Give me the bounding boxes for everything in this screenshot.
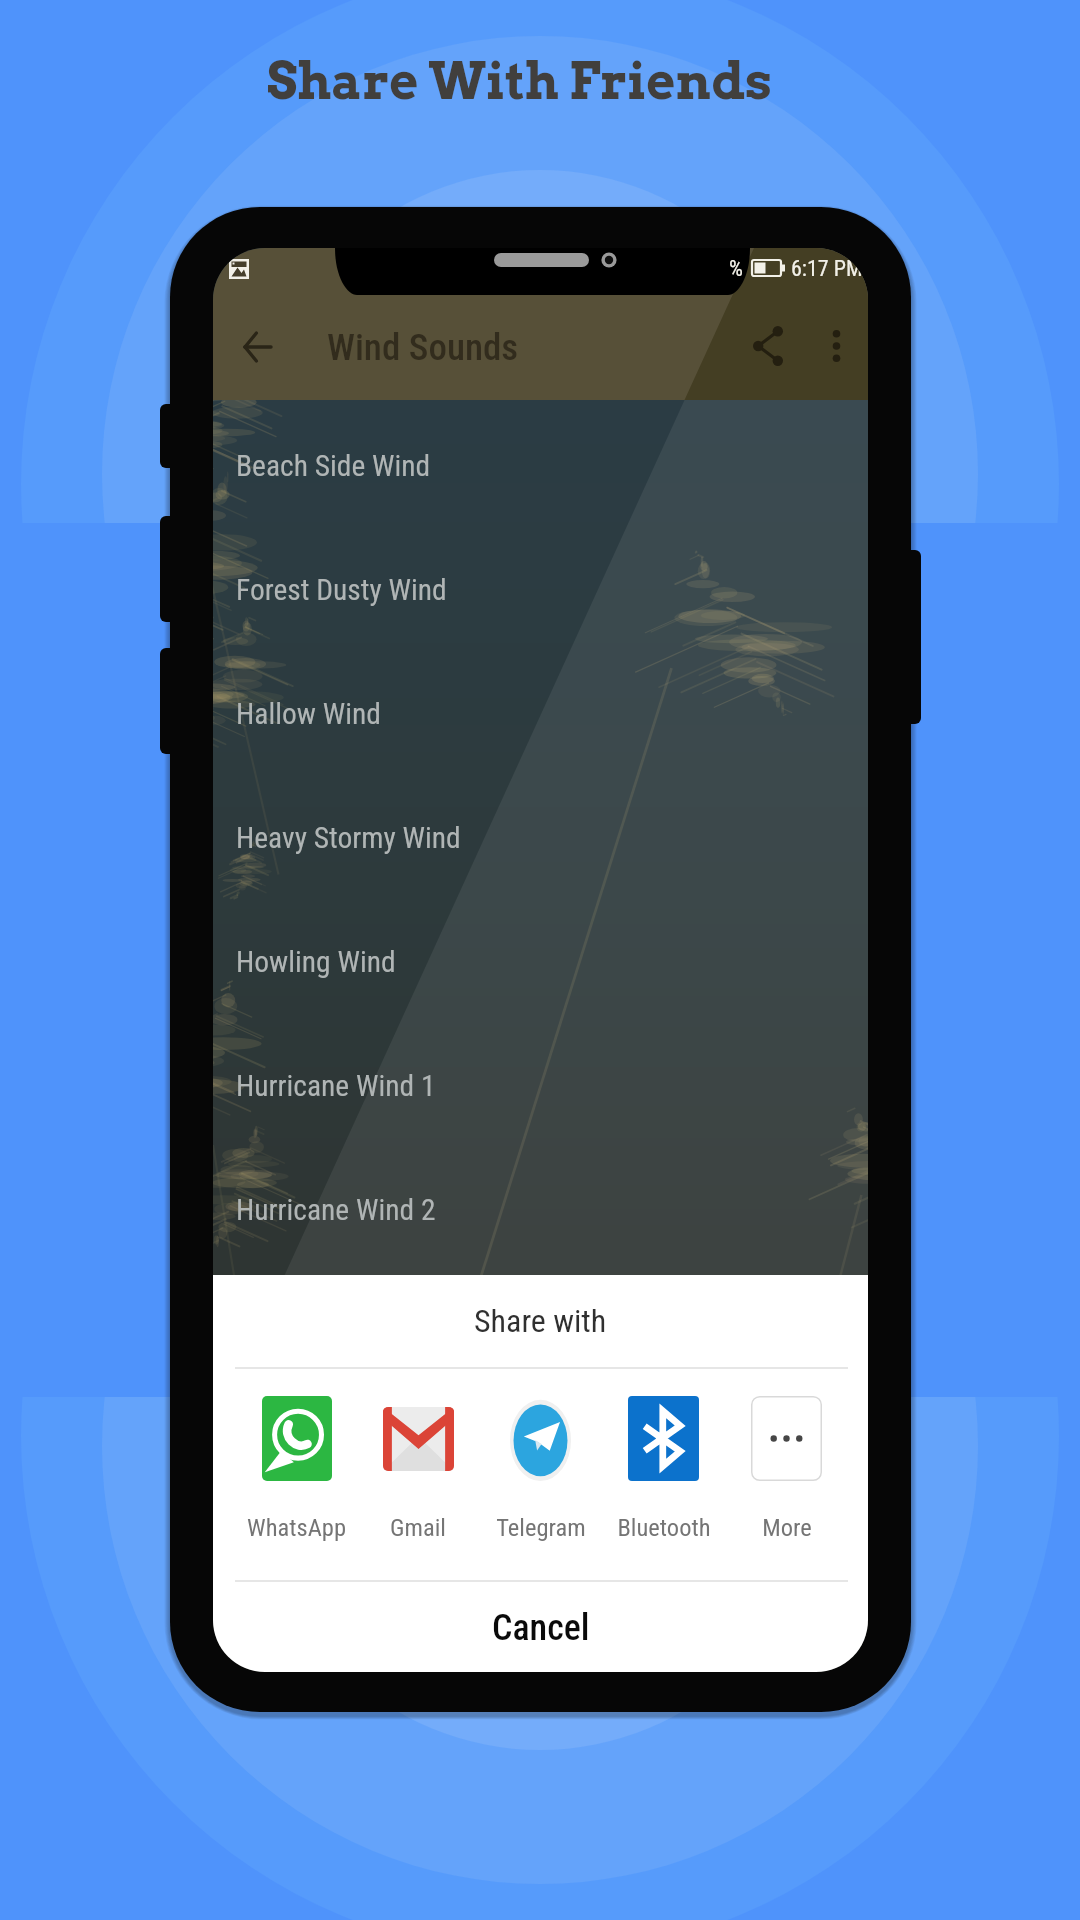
staticText: Bluetooth bbox=[617, 1513, 711, 1542]
staticText: Howling Wind bbox=[236, 945, 396, 980]
staticText: More bbox=[762, 1513, 812, 1542]
staticText: Share with bbox=[474, 1302, 607, 1340]
staticText: Wind Sounds bbox=[327, 326, 519, 369]
button[interactable]: Beach Side Wind bbox=[213, 404, 868, 528]
staticText: Heavy Stormy Wind bbox=[236, 821, 461, 856]
staticText: WhatsApp bbox=[247, 1513, 346, 1542]
button[interactable]: Share bbox=[738, 316, 798, 376]
staticText: Share With Friends bbox=[267, 51, 773, 111]
button[interactable]: Back bbox=[227, 317, 287, 377]
button[interactable]: Howling Wind bbox=[213, 900, 868, 1024]
button[interactable]: Hurricane Wind 1 bbox=[213, 1024, 868, 1148]
button[interactable]: Gmail bbox=[357, 1368, 479, 1580]
staticText: % bbox=[729, 256, 743, 282]
button[interactable]: Heavy Stormy Wind bbox=[213, 776, 868, 900]
staticText: Hurricane Wind 2 bbox=[236, 1193, 436, 1228]
button[interactable]: More options bbox=[806, 316, 866, 376]
staticText: Beach Side Wind bbox=[236, 449, 431, 484]
staticText: Gmail bbox=[390, 1513, 446, 1542]
button[interactable]: Telegram bbox=[479, 1368, 602, 1580]
staticText: Hallow Wind bbox=[236, 697, 381, 732]
staticText: 6:17 PM bbox=[791, 256, 863, 282]
staticText: Hurricane Wind 1 bbox=[236, 1069, 436, 1104]
button[interactable]: WhatsApp bbox=[235, 1368, 357, 1580]
button[interactable]: Forest Dusty Wind bbox=[213, 528, 868, 652]
button[interactable]: Hurricane Wind 2 bbox=[213, 1148, 868, 1272]
button[interactable]: More bbox=[725, 1368, 848, 1580]
button[interactable]: Hallow Wind bbox=[213, 652, 868, 776]
button[interactable]: Bluetooth bbox=[602, 1368, 725, 1580]
staticText: Cancel bbox=[492, 1607, 590, 1649]
staticText: Forest Dusty Wind bbox=[236, 573, 447, 608]
staticText: Telegram bbox=[496, 1513, 586, 1542]
button[interactable]: Cancel bbox=[213, 1584, 868, 1672]
